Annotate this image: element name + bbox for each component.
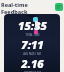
staticText: Feedback bbox=[1, 8, 28, 14]
staticText: DISTANCE KM bbox=[24, 71, 41, 72]
button[interactable]: Real-time bbox=[1, 1, 54, 14]
button[interactable]: 15:35 bbox=[6, 18, 58, 36]
button[interactable]: 7:11 bbox=[6, 37, 58, 55]
button[interactable]: 2.16 bbox=[6, 56, 58, 72]
staticText: 2.16 bbox=[21, 56, 44, 71]
staticText: 15:35 bbox=[18, 18, 47, 33]
staticText: TOTAL TIME bbox=[25, 33, 40, 36]
button[interactable]: 15:35 bbox=[4, 14, 60, 72]
staticText: AVG PACE / KM bbox=[23, 52, 41, 55]
staticText: Real-time bbox=[1, 1, 28, 8]
staticText: 7:11 bbox=[21, 37, 44, 52]
button[interactable]: Open app bbox=[55, 3, 63, 11]
button[interactable]: Cadence badge bbox=[34, 30, 38, 34]
button[interactable]: Heart rate badge bbox=[33, 17, 38, 22]
